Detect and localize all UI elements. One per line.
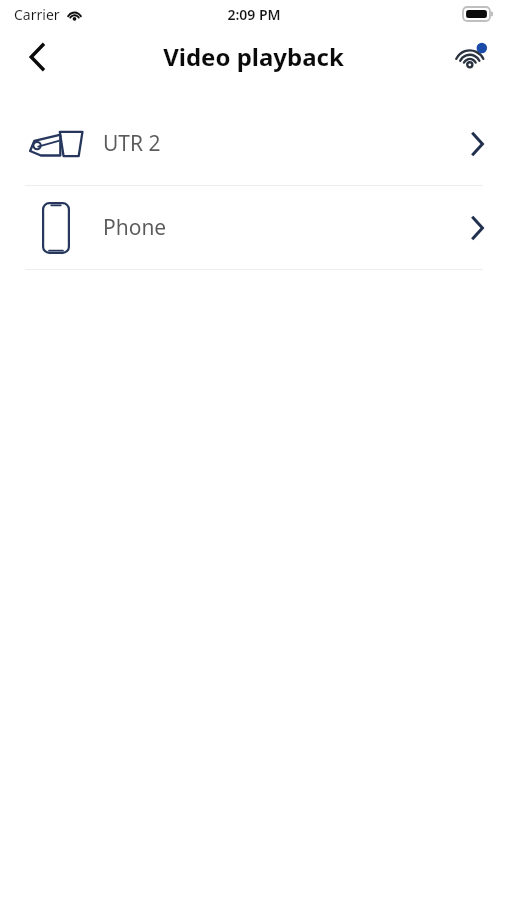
- other: UTR 2 device: [25, 128, 87, 160]
- button[interactable]: Back: [14, 33, 62, 81]
- button[interactable]: UTR 2 device: [0, 102, 507, 185]
- button[interactable]: Phone: [0, 186, 507, 269]
- other: Phone: [25, 202, 87, 254]
- button[interactable]: Connection status: [447, 33, 495, 81]
- staticText: Video playback: [163, 40, 344, 73]
- staticText: 2:09 PM: [227, 5, 281, 24]
- staticText: Phone: [103, 213, 167, 242]
- staticText: Carrier: [14, 5, 60, 24]
- staticText: UTR 2: [103, 129, 161, 158]
